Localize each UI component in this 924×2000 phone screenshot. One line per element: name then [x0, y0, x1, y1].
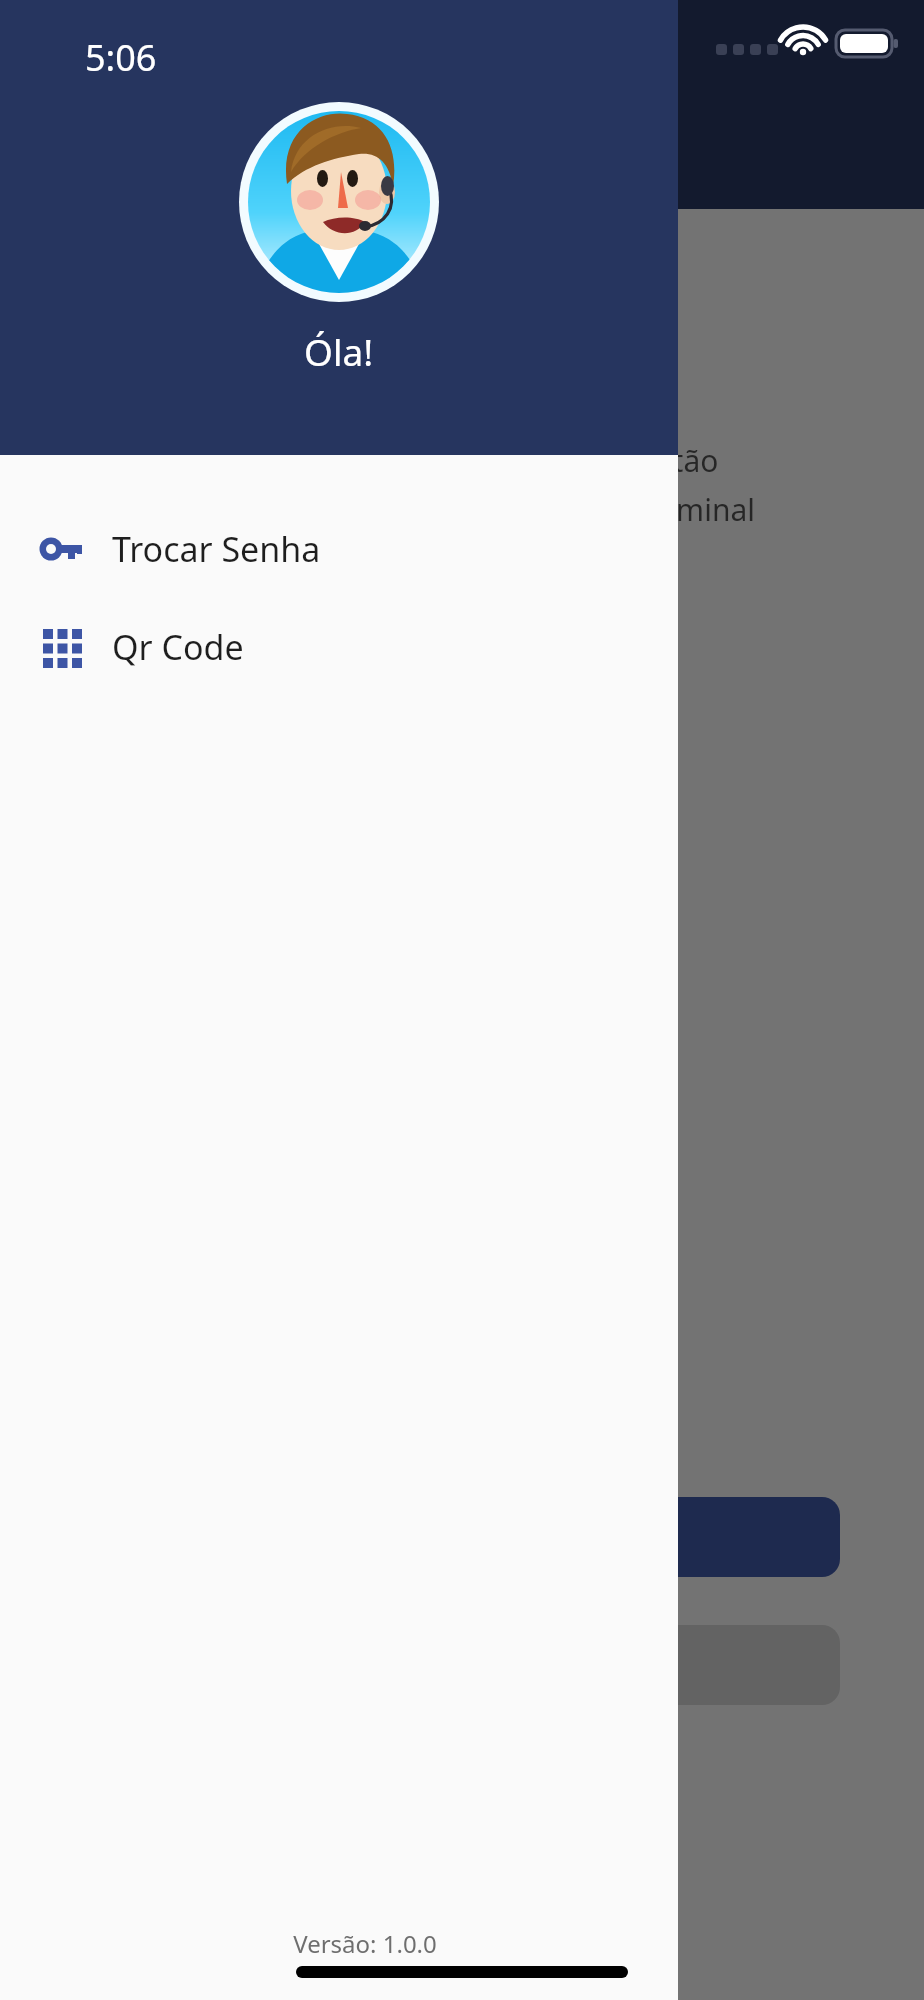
staticText: Qr Code [112, 624, 244, 670]
staticText: Trocar Senha [112, 526, 321, 572]
staticText: o botão [610, 440, 719, 481]
button[interactable] [560, 1497, 840, 1577]
staticText: 5:06 [85, 33, 157, 82]
button[interactable] [560, 1625, 840, 1705]
staticText: Versão: 1.0.0 [52, 1927, 678, 1960]
button[interactable]: Trocar Senha [0, 517, 678, 581]
staticText: o terminal [610, 489, 755, 530]
button[interactable]: Qr Code [0, 615, 678, 679]
staticText: Óla! [304, 326, 374, 376]
